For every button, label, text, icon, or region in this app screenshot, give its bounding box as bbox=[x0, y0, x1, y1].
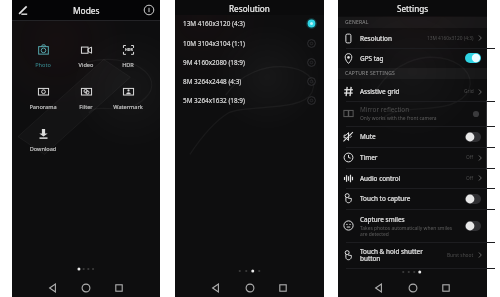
button[interactable]: 13M 4160x3120 (4:3) bbox=[175, 14, 324, 33]
button[interactable]: Info bbox=[142, 3, 156, 17]
staticText: Timer bbox=[360, 153, 378, 162]
button[interactable]: Back bbox=[209, 281, 223, 295]
staticText: Grid bbox=[464, 88, 474, 95]
button[interactable]: Edit bbox=[16, 3, 30, 17]
staticText: Settings bbox=[397, 3, 429, 14]
button[interactable]: Mirror reflection bbox=[338, 101, 487, 126]
button[interactable]: Video bbox=[62, 40, 110, 69]
button[interactable]: Photo bbox=[19, 40, 67, 69]
button[interactable]: Capture smiles bbox=[338, 209, 487, 242]
button[interactable]: Toggle bbox=[465, 221, 481, 231]
staticText: 10M 3104x3104 (1:1) bbox=[183, 39, 245, 48]
button[interactable]: Audio control bbox=[338, 168, 487, 188]
staticText: Filter bbox=[62, 103, 110, 111]
staticText: Panorama bbox=[19, 103, 67, 111]
button[interactable]: Assistive grid bbox=[338, 82, 487, 101]
button[interactable]: Recents bbox=[439, 281, 453, 295]
button[interactable]: Resolution bbox=[338, 28, 487, 48]
button[interactable]: Toggle bbox=[465, 194, 481, 204]
staticText: Off bbox=[466, 175, 474, 182]
button[interactable]: Touch to capture bbox=[338, 188, 487, 209]
button[interactable]: HDR bbox=[104, 40, 152, 69]
staticText: Takes photos automatically when smiles a… bbox=[360, 225, 453, 237]
button[interactable]: Home bbox=[243, 281, 257, 295]
staticText: Off bbox=[466, 154, 474, 161]
button[interactable]: Toggle bbox=[465, 109, 481, 119]
button[interactable]: Mute bbox=[338, 126, 487, 147]
button[interactable]: Download bbox=[19, 124, 67, 153]
button[interactable]: Home bbox=[79, 281, 93, 295]
button[interactable]: Back bbox=[46, 281, 60, 295]
staticText: Only works with the front camera bbox=[360, 115, 453, 122]
button[interactable]: GPS tag bbox=[338, 48, 487, 68]
button[interactable]: Filter bbox=[62, 82, 110, 111]
staticText: HDR bbox=[125, 47, 133, 52]
button[interactable]: Back bbox=[372, 281, 386, 295]
button[interactable]: Panorama bbox=[19, 82, 67, 111]
button[interactable]: Watermark bbox=[104, 82, 152, 111]
button[interactable]: Home bbox=[406, 281, 420, 295]
button[interactable]: 5M 3264x1632 (18:9) bbox=[175, 91, 324, 110]
staticText: 13M 4160x3120 (4:3) bbox=[427, 35, 474, 42]
staticText: Touch to capture bbox=[360, 194, 411, 203]
staticText: 13M 4160x3120 (4:3) bbox=[183, 19, 245, 28]
staticText: CAPTURE SETTINGS bbox=[345, 70, 396, 77]
staticText: Watermark bbox=[104, 103, 152, 111]
staticText: Mute bbox=[360, 132, 376, 141]
button[interactable]: Touch & hold shutter button bbox=[338, 242, 487, 268]
staticText: Mirror reflection bbox=[360, 105, 410, 114]
button[interactable]: 9M 4160x2080 (18:9) bbox=[175, 53, 324, 72]
staticText: 8M 3264x2448 (4:3) bbox=[183, 77, 242, 86]
staticText: Touch & hold shutter button bbox=[360, 247, 423, 263]
staticText: Video bbox=[62, 61, 110, 69]
button[interactable]: Recents bbox=[276, 281, 290, 295]
button[interactable]: Recents bbox=[112, 281, 126, 295]
staticText: GPS tag bbox=[360, 54, 384, 63]
staticText: Capture smiles bbox=[360, 215, 405, 224]
staticText: Modes bbox=[73, 5, 100, 16]
staticText: 5M 3264x1632 (18:9) bbox=[183, 96, 245, 105]
button[interactable]: Timer bbox=[338, 147, 487, 168]
button[interactable]: 10M 3104x3104 (1:1) bbox=[175, 34, 324, 53]
staticText: Resolution bbox=[229, 3, 270, 14]
staticText: Photo bbox=[19, 61, 67, 69]
staticText: Burst shoot bbox=[447, 252, 474, 259]
button[interactable]: 8M 3264x2448 (4:3) bbox=[175, 72, 324, 91]
staticText: HDR bbox=[104, 61, 152, 69]
staticText: Download bbox=[19, 145, 67, 153]
staticText: Assistive grid bbox=[360, 87, 400, 96]
button[interactable]: Toggle bbox=[465, 53, 481, 63]
button[interactable]: Toggle bbox=[465, 132, 481, 142]
staticText: Resolution bbox=[360, 34, 392, 43]
staticText: 9M 4160x2080 (18:9) bbox=[183, 58, 245, 67]
staticText: Audio control bbox=[360, 174, 401, 183]
staticText: GENERAL bbox=[345, 19, 369, 26]
